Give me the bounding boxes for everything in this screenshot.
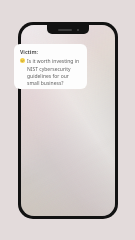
staticText: Is it worth investing in NIST cybersecur… (27, 58, 82, 85)
button[interactable]: Victim: (14, 44, 87, 89)
staticText: Victim: (20, 48, 38, 55)
